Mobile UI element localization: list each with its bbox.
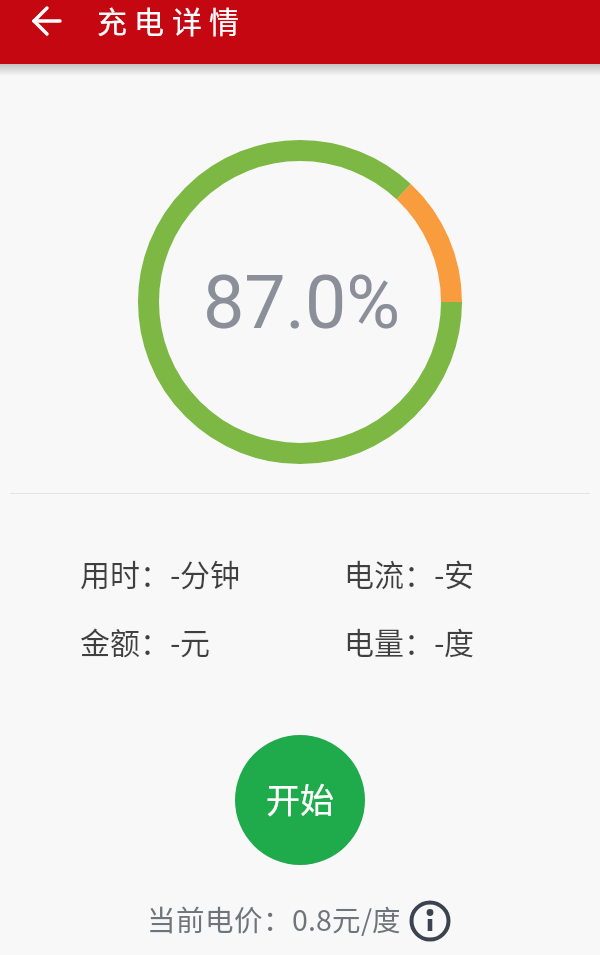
button[interactable] (235, 735, 365, 865)
button[interactable] (21, 0, 69, 44)
staticText: 87.0% (203, 260, 401, 346)
button[interactable] (147, 900, 453, 944)
